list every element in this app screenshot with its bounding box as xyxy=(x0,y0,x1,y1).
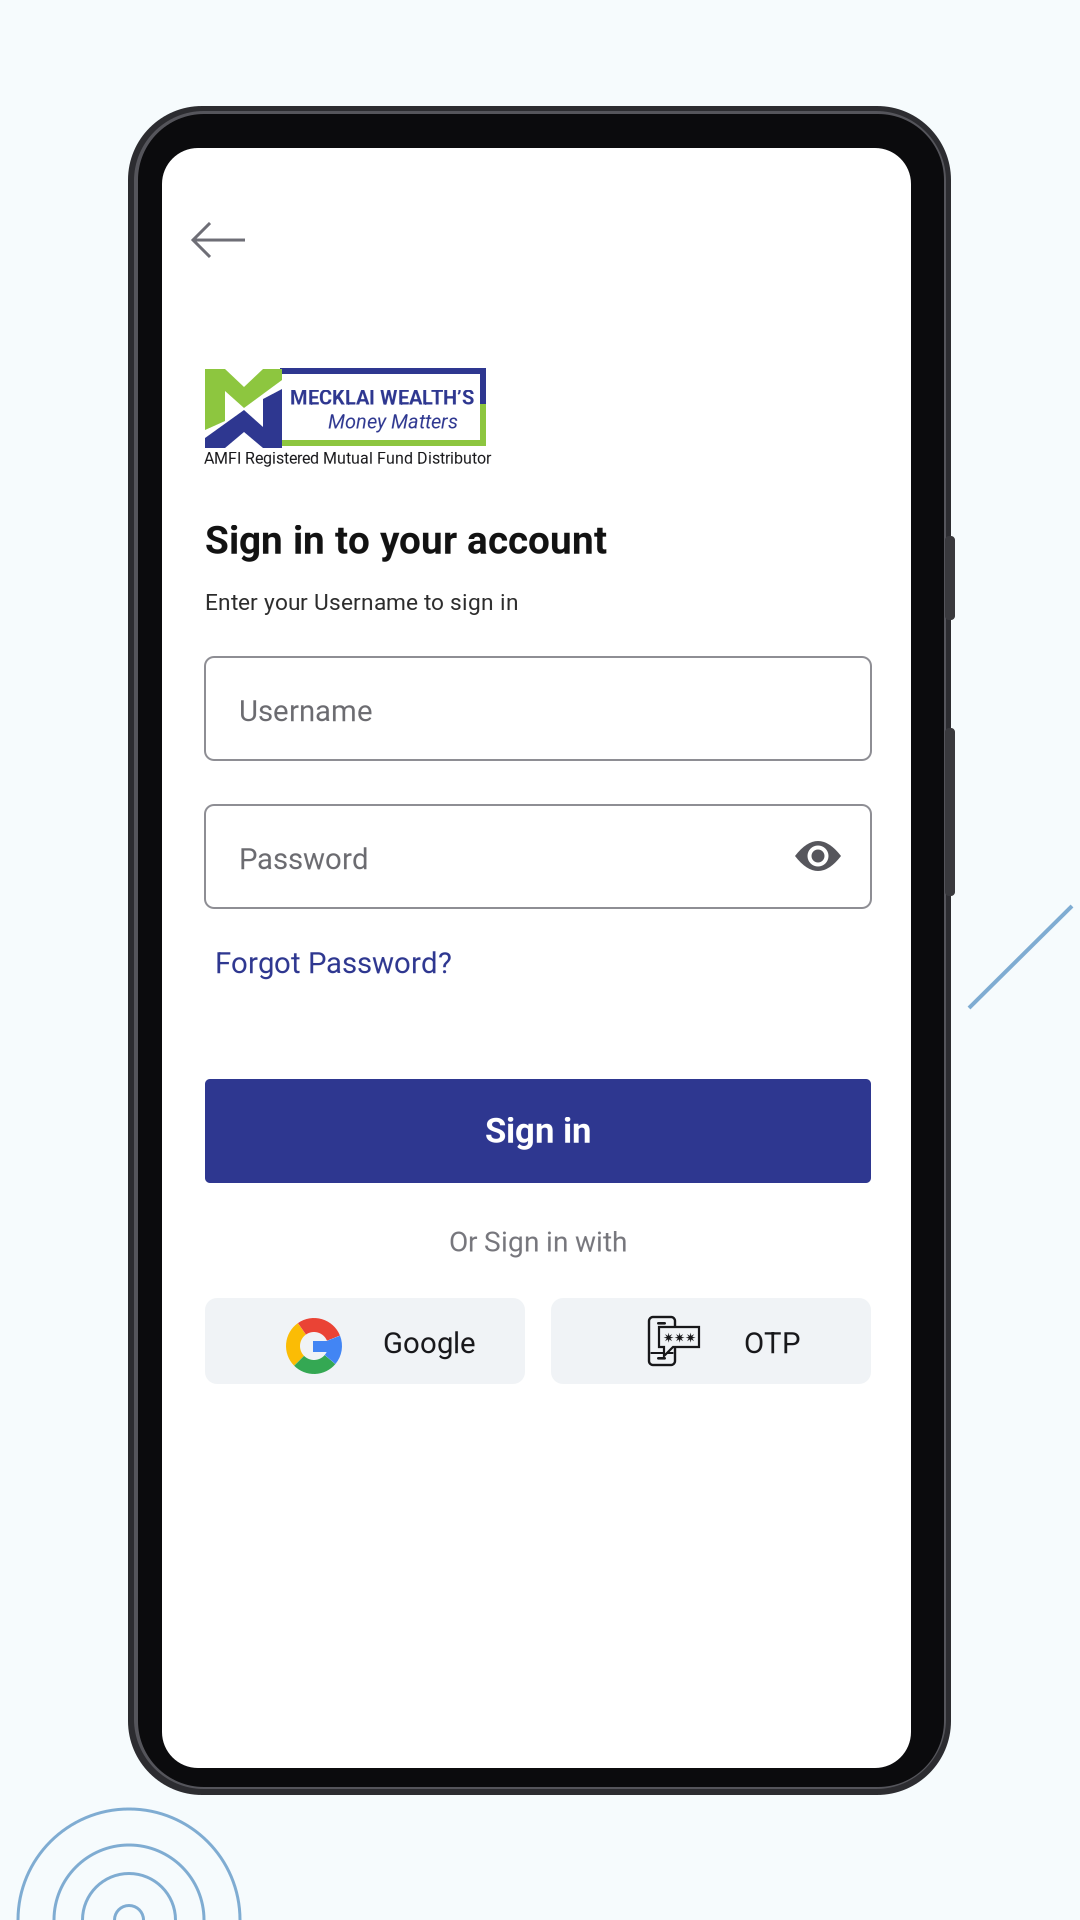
staticText: Username xyxy=(239,694,373,728)
staticText: Password xyxy=(239,842,369,876)
staticText: AMFI Registered Mutual Fund Distributor xyxy=(204,449,491,468)
staticText: Forgot Password? xyxy=(215,946,452,980)
button[interactable]: ✷✷✷ xyxy=(551,1298,871,1384)
staticText: Google xyxy=(383,1326,476,1360)
button[interactable]: Show password xyxy=(783,821,853,891)
staticText: Money Matters xyxy=(328,410,458,433)
staticText: Or Sign in with xyxy=(449,1226,627,1258)
button[interactable]: Sign in xyxy=(205,1079,871,1183)
button[interactable]: Forgot Password? xyxy=(207,938,460,988)
staticText: Sign in to your account xyxy=(205,518,607,563)
staticText: MECKLAI WEALTH’S xyxy=(290,386,474,409)
staticText: OTP xyxy=(744,1326,801,1360)
staticText: ✷✷✷ xyxy=(663,1330,696,1345)
staticText: Sign in xyxy=(485,1111,591,1151)
button[interactable]: Back xyxy=(171,200,267,280)
button[interactable]: Google xyxy=(205,1298,525,1384)
staticText: Enter your Username to sign in xyxy=(205,589,519,616)
